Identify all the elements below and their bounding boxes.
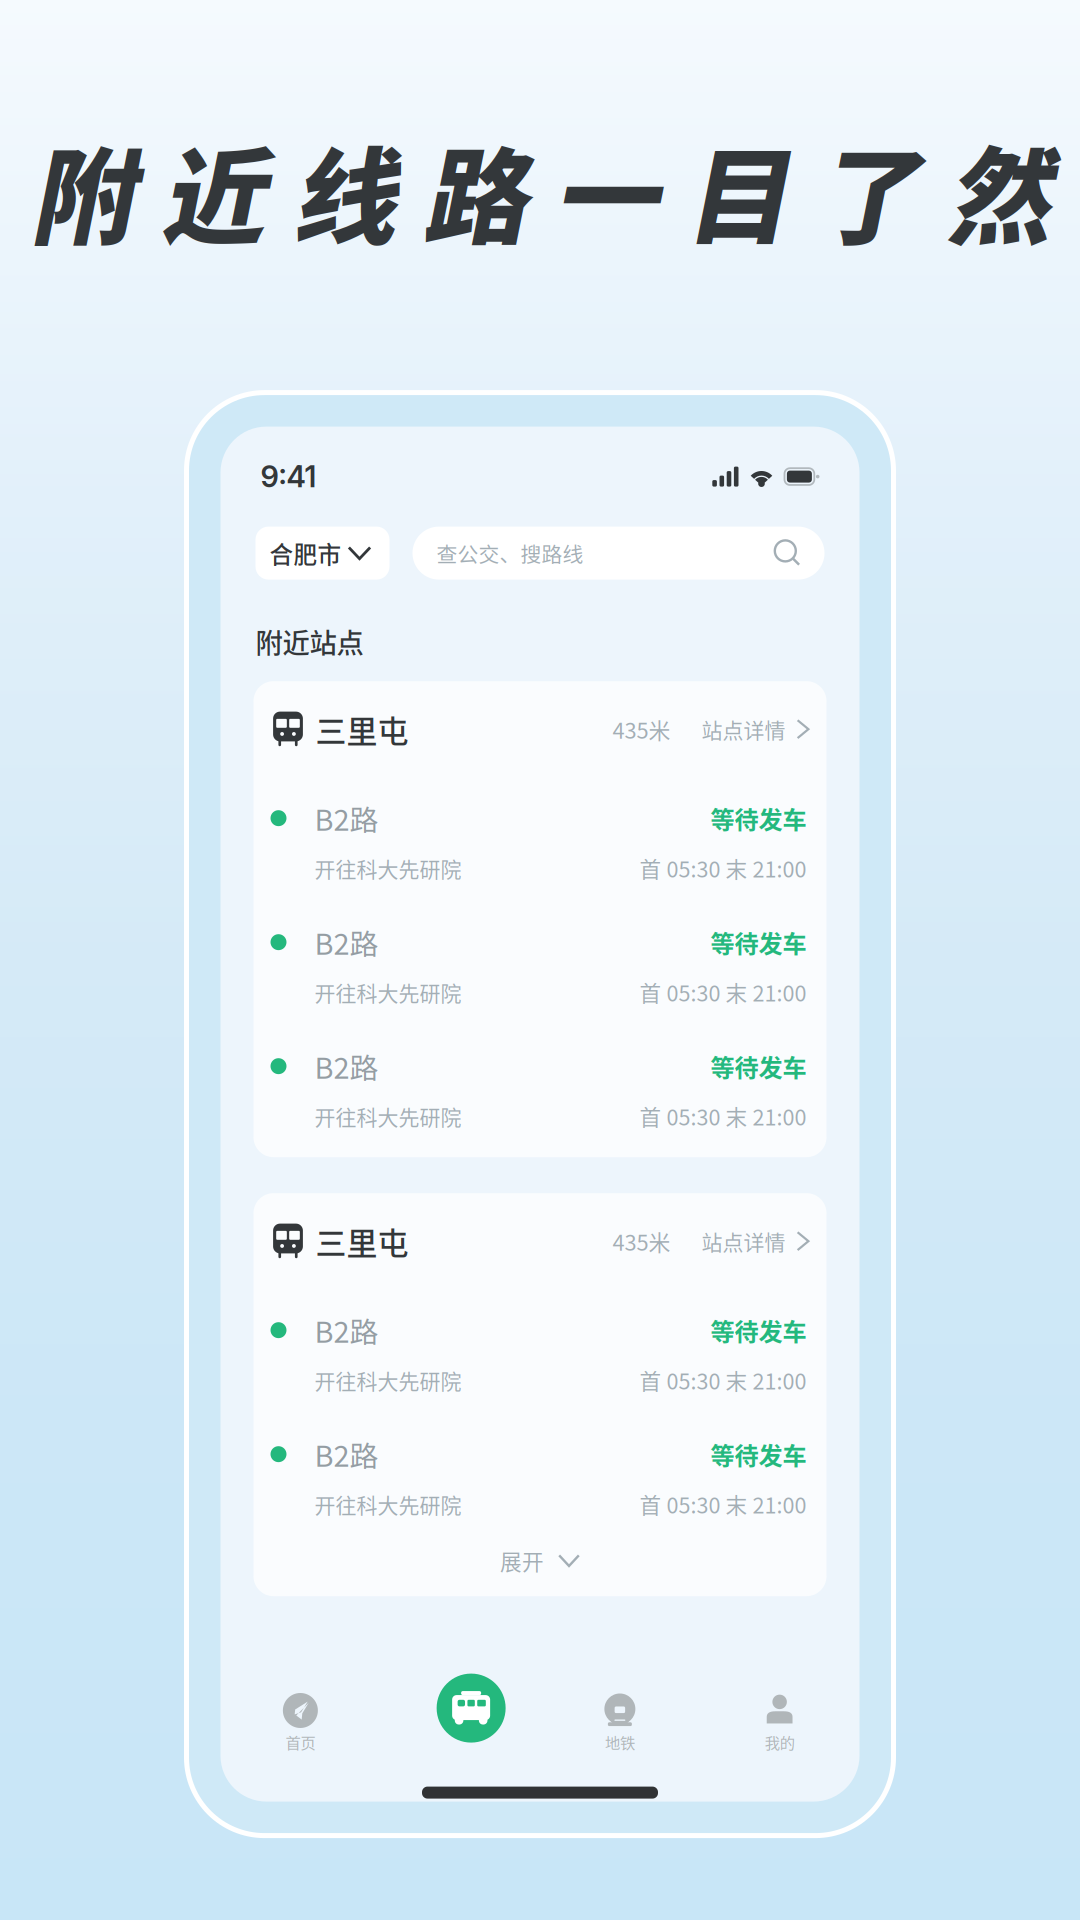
button[interactable]: 展开 (253, 1525, 826, 1596)
staticText: 等待发车 (710, 1313, 806, 1348)
button[interactable]: 合肥市 (255, 527, 389, 580)
button[interactable]: B2路 (253, 913, 826, 1013)
staticText: 附近线路一目了然 (29, 115, 1050, 266)
staticText: 开往科大先研院 (314, 1489, 461, 1519)
staticText: 合肥市 (269, 536, 341, 570)
button[interactable]: B2路 (253, 1037, 826, 1137)
button[interactable]: 首页 (220, 1693, 380, 1753)
staticText: 首 05:30 末 21:00 (639, 852, 806, 884)
staticText: 435米 (612, 1225, 670, 1257)
staticText: 开往科大先研院 (314, 1365, 461, 1395)
button[interactable]: 我的 (700, 1693, 860, 1753)
staticText: B2路 (314, 1433, 378, 1475)
button[interactable]: 三里屯 (253, 1193, 826, 1289)
button[interactable]: 三里屯 (253, 681, 826, 777)
staticText: 开往科大先研院 (314, 977, 461, 1007)
staticText: B2路 (314, 1045, 378, 1087)
staticText: 附近站点 (255, 622, 363, 661)
staticText: 首 05:30 末 21:00 (639, 976, 806, 1008)
button[interactable]: B2路 (253, 1301, 826, 1401)
staticText: 首页 (285, 1731, 315, 1753)
staticText: 首 05:30 末 21:00 (639, 1488, 806, 1520)
staticText: 站点详情 (701, 1226, 785, 1256)
staticText: 地铁 (605, 1731, 635, 1753)
staticText: 站点详情 (701, 714, 785, 744)
staticText: 三里屯 (315, 707, 408, 752)
staticText: B2路 (314, 797, 378, 839)
staticText: 首 05:30 末 21:00 (639, 1100, 806, 1132)
staticText: 开往科大先研院 (314, 853, 461, 883)
staticText: 等待发车 (710, 801, 806, 836)
staticText: 我的 (765, 1731, 795, 1753)
staticText: 等待发车 (710, 1437, 806, 1472)
staticText: 等待发车 (710, 1049, 806, 1084)
staticText: 展开 (500, 1545, 544, 1576)
staticText: 435米 (612, 713, 670, 745)
staticText: 开往科大先研院 (314, 1101, 461, 1131)
staticText: B2路 (314, 921, 378, 963)
button[interactable]: B2路 (253, 789, 826, 889)
staticText: 等待发车 (710, 925, 806, 960)
button[interactable]: 查公交、搜路线 (412, 527, 824, 580)
staticText: 9:41 (260, 459, 316, 494)
staticText: 三里屯 (315, 1219, 408, 1264)
button[interactable]: 公交 (380, 1689, 540, 1758)
button[interactable]: 地铁 (540, 1693, 700, 1753)
staticText: 首 05:30 末 21:00 (639, 1364, 806, 1396)
staticText: B2路 (314, 1309, 378, 1351)
button[interactable]: B2路 (253, 1425, 826, 1525)
staticText: 查公交、搜路线 (436, 538, 583, 568)
